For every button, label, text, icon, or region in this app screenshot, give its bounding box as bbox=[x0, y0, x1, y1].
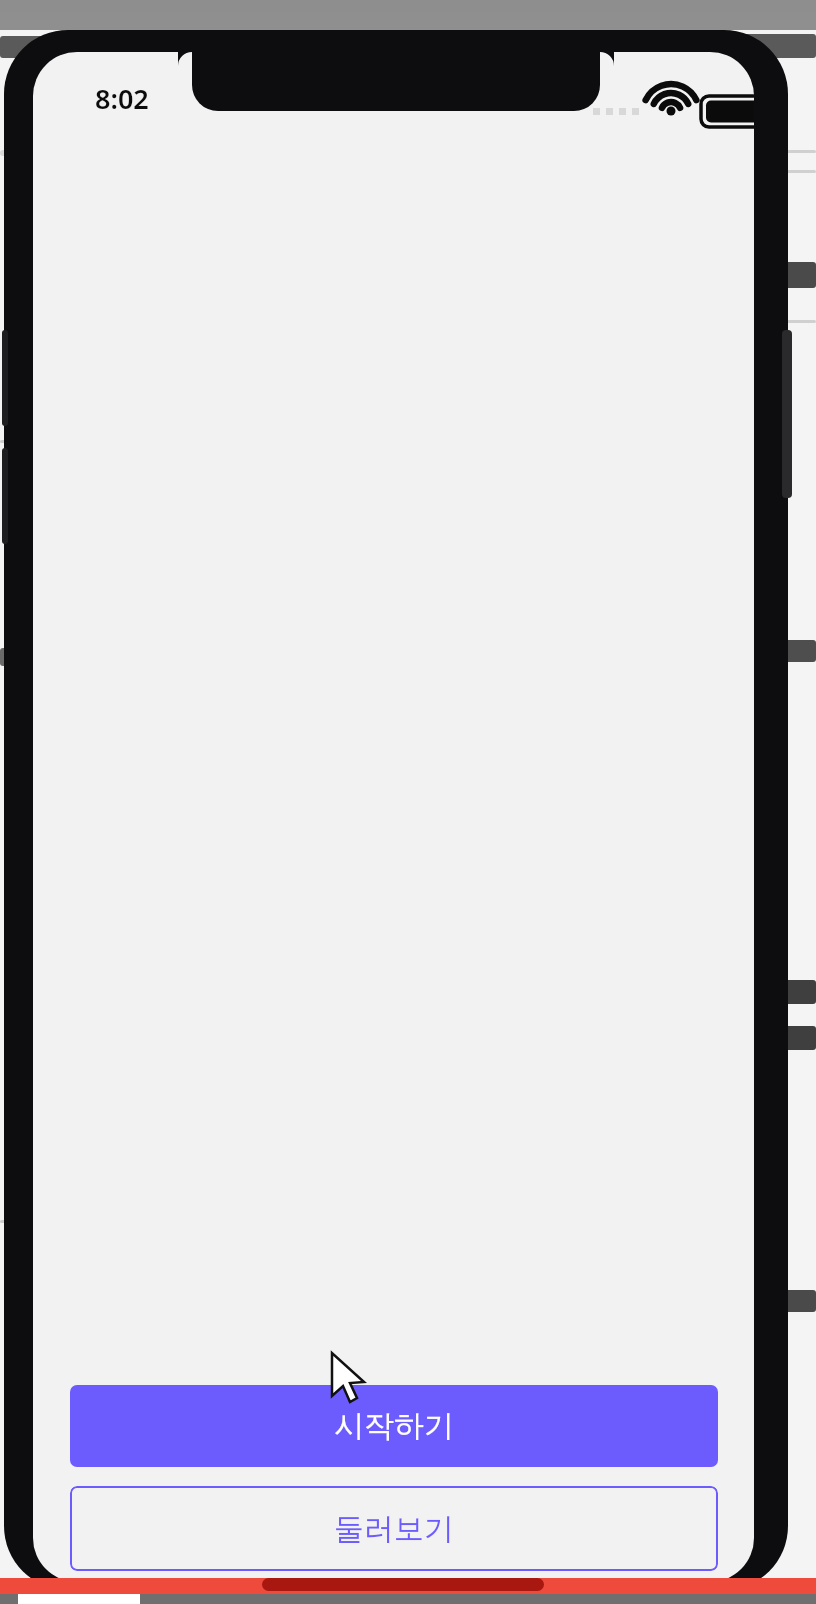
staticText: 시작하기 bbox=[334, 1407, 454, 1445]
staticText: 8:02 bbox=[95, 80, 149, 117]
staticText: 둘러보기 bbox=[334, 1510, 454, 1548]
button[interactable]: 시작하기 bbox=[70, 1385, 718, 1467]
button[interactable]: 둘러보기 bbox=[70, 1486, 718, 1571]
